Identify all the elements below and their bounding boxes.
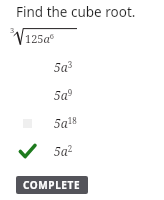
staticText: 5a3 bbox=[54, 59, 73, 75]
staticText: COMPLETE bbox=[23, 178, 81, 192]
staticText: 5a9 bbox=[54, 87, 73, 103]
staticText: 125a6 bbox=[25, 31, 55, 46]
button[interactable]: 5a3 bbox=[0, 53, 164, 81]
staticText: Find the cube root. bbox=[16, 3, 136, 21]
button[interactable]: 5a9 bbox=[0, 81, 164, 109]
button[interactable]: 5a18 bbox=[0, 109, 164, 137]
button[interactable]: COMPLETE bbox=[16, 176, 88, 194]
button[interactable]: Correct answer bbox=[0, 137, 164, 165]
staticText: 5a2 bbox=[54, 143, 73, 159]
staticText: 3 bbox=[10, 25, 15, 35]
other: Correct answer bbox=[19, 143, 36, 160]
staticText: 5a18 bbox=[54, 115, 77, 131]
